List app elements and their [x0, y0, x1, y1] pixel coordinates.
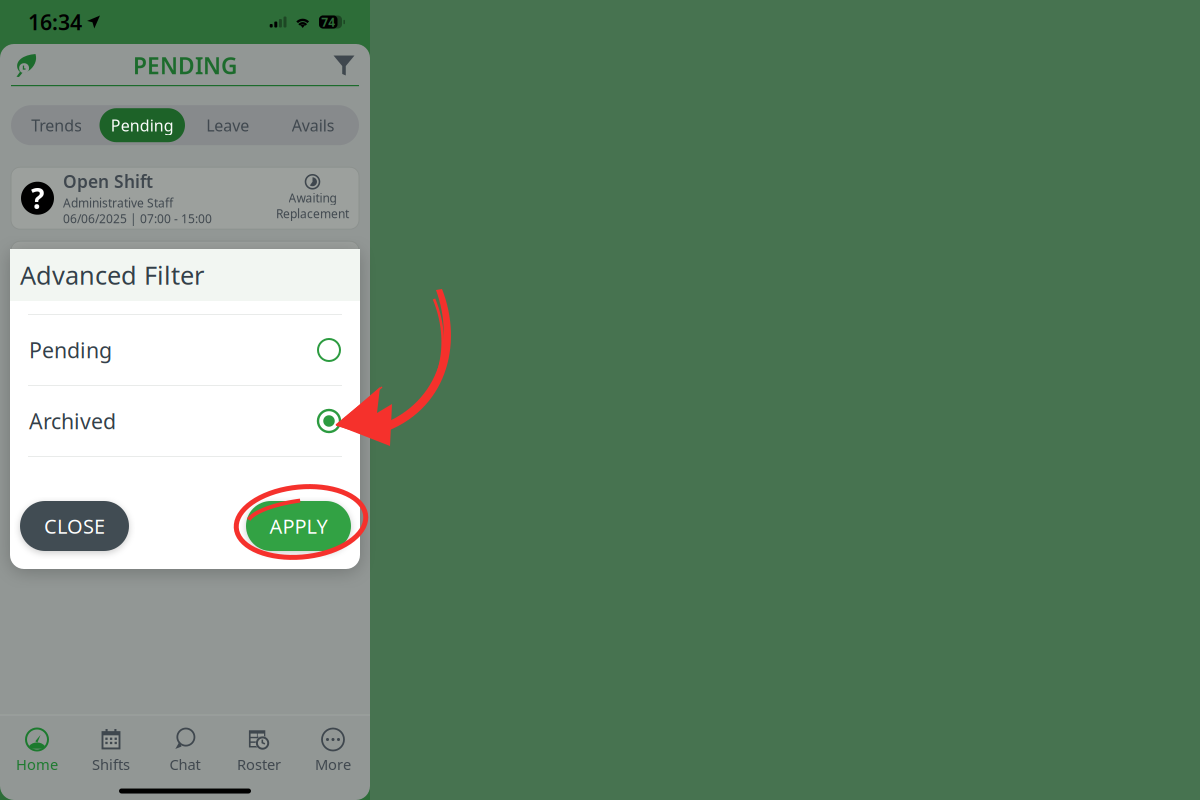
staticText: Advanced Filter — [20, 258, 204, 292]
staticText: 16:34 — [28, 8, 82, 36]
staticText: PENDING — [133, 50, 237, 80]
staticText: More — [315, 754, 351, 774]
button[interactable]: Trends — [14, 108, 99, 142]
button[interactable]: Pending — [10, 315, 360, 385]
staticText: Shifts — [92, 754, 130, 774]
button[interactable]: Pending — [99, 108, 185, 142]
staticText: Avails — [292, 115, 335, 136]
button[interactable]: ? — [11, 167, 359, 229]
button[interactable]: APPLY — [246, 501, 351, 551]
staticText: 74 — [321, 14, 335, 30]
staticText: Archived — [29, 407, 116, 435]
staticText: Roster — [237, 754, 281, 774]
staticText: Home — [16, 754, 58, 774]
button[interactable]: Roster — [222, 728, 296, 780]
staticText: Leave — [206, 115, 249, 136]
staticText: Pending — [29, 336, 112, 364]
staticText: CLOSE — [44, 513, 105, 539]
button[interactable]: Chat — [148, 728, 222, 780]
staticText: Annual Leave — [67, 251, 200, 278]
staticText: Chat — [169, 754, 200, 774]
button[interactable]: Archived — [10, 386, 360, 456]
button[interactable]: Filter — [322, 44, 366, 86]
button[interactable]: Shifts — [74, 728, 148, 780]
staticText: ? — [31, 180, 44, 217]
button[interactable]: App home — [4, 44, 48, 86]
button[interactable]: CLOSE — [20, 501, 129, 551]
staticText: Awaiting — [288, 190, 336, 206]
staticText: Pending — [111, 115, 174, 136]
staticText: APPLY — [269, 513, 327, 539]
button[interactable]: Avails — [270, 108, 356, 142]
staticText: Administrative Staff — [63, 195, 173, 211]
staticText: Trends — [31, 115, 82, 136]
button[interactable]: Leave — [185, 108, 270, 142]
staticText: 06/06/2025 | 07:00 - 15:00 — [63, 211, 212, 227]
staticText: Replacement — [276, 206, 349, 222]
staticText: Open Shift — [63, 170, 153, 193]
button[interactable]: Home — [0, 728, 74, 780]
button[interactable]: More — [296, 728, 370, 780]
